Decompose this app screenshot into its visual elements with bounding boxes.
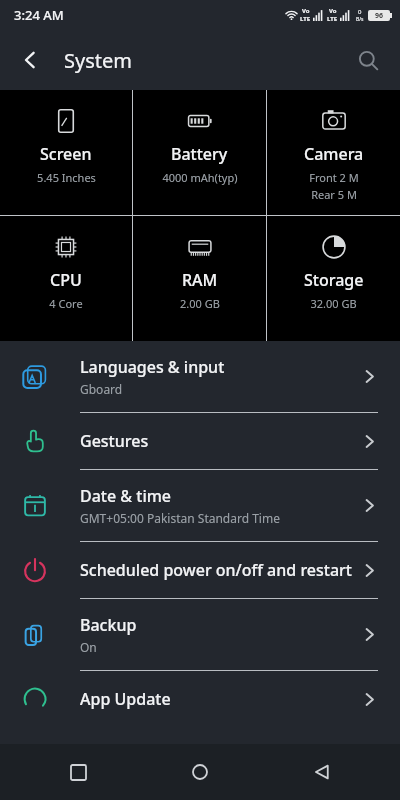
staticText: LTE: [300, 15, 311, 23]
staticText: GMT+05:00 Pakistan Standard Time: [80, 510, 280, 526]
staticText: Gestures: [80, 430, 149, 452]
staticText: 0: [358, 8, 362, 16]
staticText: Date & time: [80, 485, 172, 507]
staticText: 4 Core: [49, 296, 83, 311]
button[interactable]: Battery: [133, 90, 266, 215]
button[interactable]: Scheduled power on/off and restart: [0, 542, 400, 598]
staticText: Gboard: [80, 381, 123, 397]
staticText: Vo: [329, 7, 337, 15]
staticText: 32.00 GB: [310, 296, 357, 311]
button[interactable]: Backup: [0, 599, 400, 670]
button[interactable]: CPU: [0, 216, 132, 341]
staticText: Rear 5 M: [311, 187, 357, 202]
staticText: 5.45 Inches: [37, 170, 96, 185]
staticText: CPU: [50, 269, 82, 291]
staticText: Front 2 M: [309, 170, 359, 185]
button[interactable]: Recent apps: [56, 750, 100, 794]
button[interactable]: Storage: [267, 216, 400, 341]
staticText: Storage: [304, 269, 364, 291]
staticText: Languages & input: [80, 356, 225, 378]
button[interactable]: App Update: [0, 671, 400, 727]
button[interactable]: RAM: [133, 216, 266, 341]
button[interactable]: Search: [346, 38, 390, 82]
button[interactable]: Gestures: [0, 413, 400, 469]
button[interactable]: Languages & input: [0, 341, 400, 412]
staticText: LTE: [327, 15, 338, 23]
staticText: B/s: [356, 16, 364, 23]
staticText: Vo: [302, 7, 310, 15]
button[interactable]: Back: [8, 38, 52, 82]
button[interactable]: Back: [300, 750, 344, 794]
staticText: Scheduled power on/off and restart: [80, 559, 352, 581]
staticText: Backup: [80, 614, 137, 636]
staticText: App Update: [80, 688, 171, 710]
staticText: RAM: [182, 269, 218, 291]
staticText: Battery: [171, 143, 228, 165]
staticText: Camera: [304, 143, 364, 165]
staticText: 3:24 AM: [14, 6, 64, 24]
staticText: 4000 mAh(typ): [162, 170, 238, 185]
staticText: On: [80, 639, 97, 655]
button[interactable]: Date & time: [0, 470, 400, 541]
button[interactable]: Home: [178, 750, 222, 794]
button[interactable]: Screen: [0, 90, 132, 215]
staticText: System: [64, 47, 132, 74]
staticText: Screen: [40, 143, 92, 165]
staticText: 2.00 GB: [180, 296, 220, 311]
button[interactable]: Camera: [267, 90, 400, 215]
staticText: 96: [375, 11, 384, 21]
